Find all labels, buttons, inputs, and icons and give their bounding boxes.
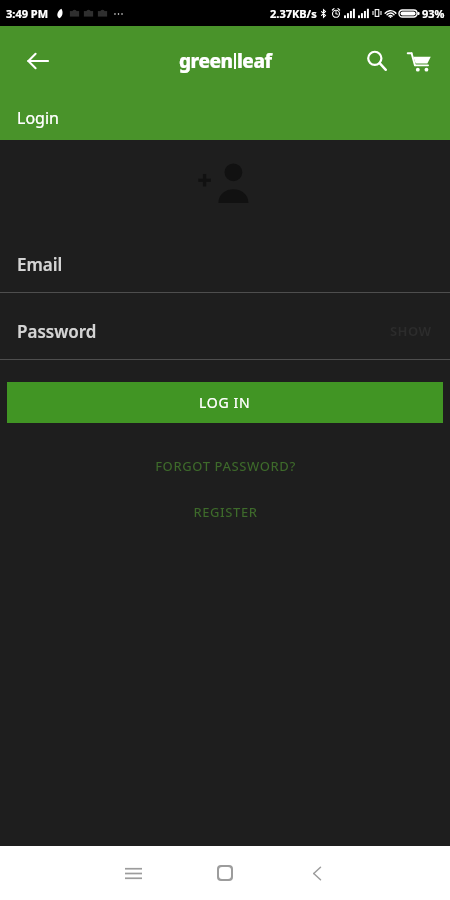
button[interactable]: Shopping cart: [400, 42, 438, 80]
staticText: LOG IN: [199, 393, 251, 412]
button[interactable]: Search: [358, 42, 396, 80]
staticText: 93%: [422, 6, 445, 21]
staticText: SHOW: [390, 322, 432, 340]
button[interactable]: Email: [0, 248, 450, 293]
staticText: REGISTER: [193, 503, 258, 521]
button[interactable]: Back: [271, 846, 363, 900]
staticText: 3:49 PM: [6, 6, 49, 21]
staticText: leaf: [237, 48, 272, 74]
button[interactable]: Home: [179, 846, 271, 900]
button[interactable]: LOG IN: [7, 382, 443, 423]
button[interactable]: Back: [20, 43, 56, 79]
staticText: FORGOT PASSWORD?: [155, 457, 296, 475]
staticText: 2.37KB/s: [270, 6, 317, 21]
staticText: Login: [17, 107, 59, 129]
button[interactable]: Recent apps: [87, 846, 179, 900]
staticText: Email: [17, 253, 63, 276]
staticText: Password: [17, 320, 97, 343]
staticText: green: [179, 48, 233, 74]
button[interactable]: REGISTER: [179, 500, 272, 524]
button[interactable]: Password: [0, 315, 450, 360]
button[interactable]: FORGOT PASSWORD?: [141, 454, 310, 478]
